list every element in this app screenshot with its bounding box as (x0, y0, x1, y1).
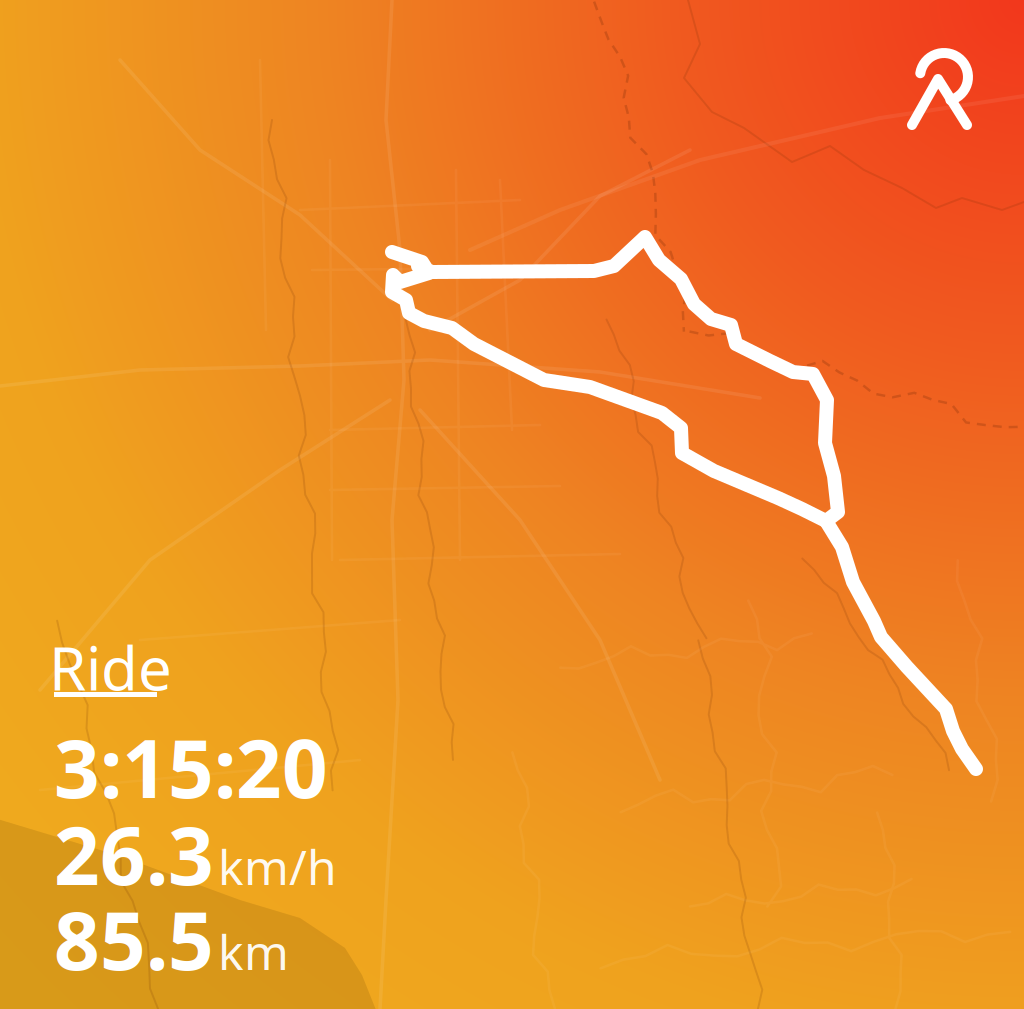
staticText: 85.5 (54, 886, 214, 992)
staticText: km/h (218, 834, 337, 898)
staticText: Ride (49, 627, 172, 707)
button[interactable]: Ride (0, 0, 1024, 1009)
staticText: km (218, 919, 289, 983)
button[interactable]: Relive (0, 0, 1024, 1009)
staticText: 26.3 (54, 801, 214, 907)
staticText: 3:15:20 (54, 714, 328, 820)
